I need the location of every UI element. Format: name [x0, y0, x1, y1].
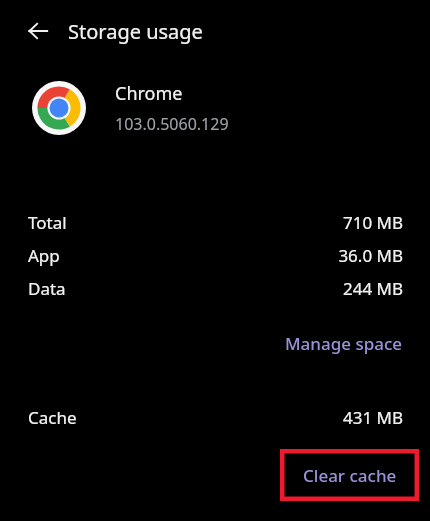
button[interactable]: Chrome: [0, 62, 430, 154]
staticText: 36.0 MB: [338, 244, 403, 267]
staticText: Data: [28, 277, 66, 300]
button[interactable]: Total: [0, 206, 430, 239]
staticText: App: [28, 244, 60, 267]
staticText: 103.0.5060.129: [115, 113, 229, 135]
button[interactable]: Data: [0, 272, 430, 305]
staticText: Chrome: [115, 81, 183, 106]
staticText: Storage usage: [68, 18, 203, 45]
staticText: 244 MB: [342, 277, 403, 300]
staticText: Manage space: [285, 332, 403, 355]
staticText: Clear cache: [303, 464, 397, 487]
staticText: Cache: [28, 406, 77, 429]
button[interactable]: Clear cache: [280, 449, 419, 501]
button[interactable]: Manage space: [278, 327, 410, 360]
staticText: 710 MB: [342, 211, 403, 234]
staticText: 431 MB: [342, 406, 403, 429]
button[interactable]: Cache: [0, 401, 430, 434]
staticText: Total: [28, 211, 67, 234]
button[interactable]: Back: [16, 9, 60, 53]
button[interactable]: App: [0, 239, 430, 272]
